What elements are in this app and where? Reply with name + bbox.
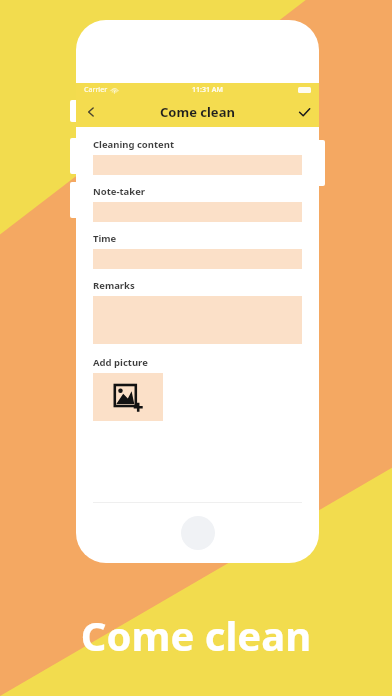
staticText: Add picture bbox=[93, 356, 148, 369]
button[interactable]: Confirm bbox=[289, 97, 319, 127]
button[interactable]: Add picture bbox=[93, 373, 163, 421]
staticText: Come clean bbox=[160, 103, 235, 121]
staticText: Carrier bbox=[84, 85, 108, 95]
staticText: 11:31 AM bbox=[192, 85, 223, 95]
button[interactable]: Home bbox=[181, 516, 215, 550]
staticText: Cleaning content bbox=[93, 138, 175, 151]
button[interactable]: Back bbox=[76, 97, 106, 127]
staticText: Come clean bbox=[0, 608, 392, 662]
staticText: Remarks bbox=[93, 279, 135, 292]
staticText: Note-taker bbox=[93, 185, 146, 198]
staticText: Time bbox=[93, 232, 117, 245]
